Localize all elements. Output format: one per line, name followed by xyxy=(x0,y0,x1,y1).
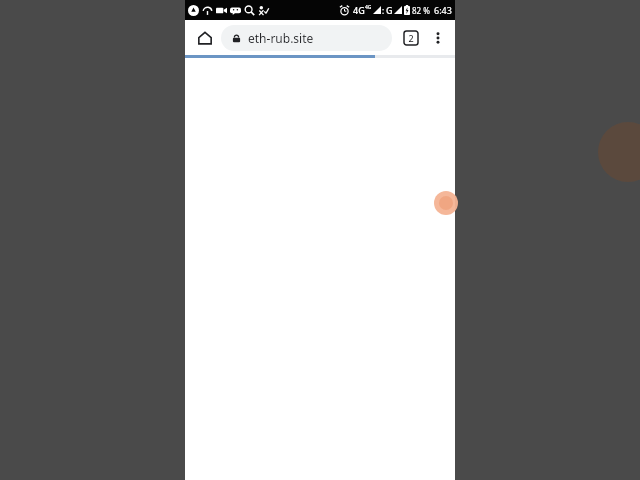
staticText: G xyxy=(386,4,393,16)
staticText: 6:43 xyxy=(434,4,452,16)
staticText: 2 xyxy=(408,32,414,44)
staticText: 4G xyxy=(353,4,365,16)
button[interactable]: eth-rub.site xyxy=(221,25,392,51)
staticText: 82 % xyxy=(412,5,430,16)
staticText: eth-rub.site xyxy=(248,30,314,46)
staticText: : xyxy=(382,5,385,16)
button[interactable]: More options xyxy=(425,25,451,51)
button[interactable]: Home xyxy=(192,25,218,51)
staticText: 4G xyxy=(365,4,372,11)
button[interactable]: Tabs, 2 open xyxy=(398,25,424,51)
